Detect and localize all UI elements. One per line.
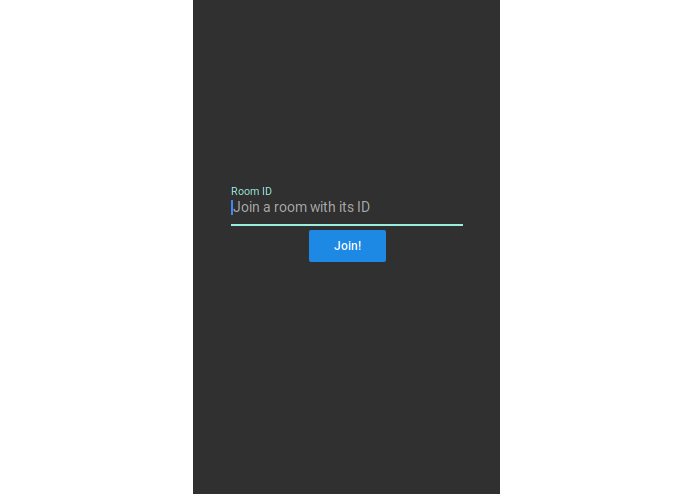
staticText: Room ID — [231, 185, 272, 197]
button[interactable]: Room ID — [231, 185, 463, 227]
staticText: Join! — [334, 239, 361, 253]
staticText: Join a room with its ID — [233, 199, 370, 215]
button[interactable]: Join! — [309, 230, 386, 262]
